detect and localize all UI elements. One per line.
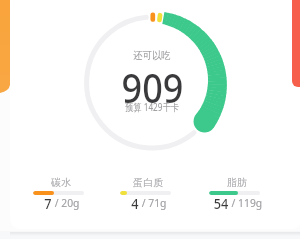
button[interactable]: 脂肪 [194,176,274,213]
button[interactable] [292,0,300,87]
button[interactable] [10,0,300,229]
staticText: / 71g [139,195,167,210]
staticText: 预算 1429千卡 [125,100,179,114]
staticText: / 20g [52,195,80,210]
button[interactable]: 蛋白质 [105,176,185,213]
staticText: 脂肪 [227,176,247,189]
staticText: 54 [214,195,229,213]
staticText: 碳水 [51,176,71,189]
staticText: 蛋白质 [133,176,163,189]
staticText: 7 [44,195,52,213]
staticText: 还可以吃 [133,49,170,62]
button[interactable]: 碳水 [18,176,98,213]
staticText: / 119g [229,195,262,210]
staticText: 909 [121,60,183,114]
staticText: 4 [131,195,139,213]
